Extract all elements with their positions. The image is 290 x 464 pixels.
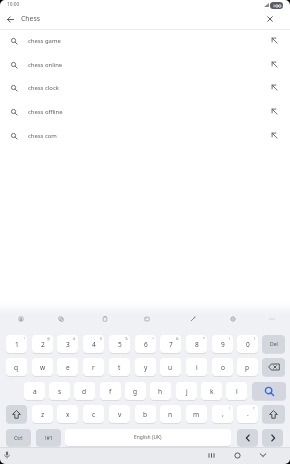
button[interactable]: 7 — [160, 335, 181, 353]
staticText: ) — [254, 336, 256, 341]
button[interactable] — [53, 311, 69, 327]
button[interactable] — [6, 405, 27, 423]
button[interactable]: 8 — [186, 335, 207, 353]
staticText: 5 — [118, 340, 122, 349]
button[interactable]: g — [125, 382, 146, 400]
button[interactable]: a — [24, 382, 45, 400]
button[interactable]: !#1 — [36, 429, 61, 446]
button[interactable]: r — [83, 358, 104, 376]
button[interactable]: 4 — [83, 335, 104, 353]
button[interactable]: i — [186, 358, 207, 376]
staticText: y — [144, 363, 148, 372]
button[interactable] — [237, 429, 258, 446]
button[interactable] — [13, 311, 29, 327]
button[interactable]: z — [32, 405, 53, 423]
button[interactable]: f — [100, 382, 121, 400]
button[interactable] — [2, 11, 18, 27]
button[interactable]: h — [150, 382, 171, 400]
button[interactable]: . — [237, 405, 258, 423]
button[interactable]: , — [212, 405, 233, 423]
button[interactable] — [262, 11, 278, 27]
staticText: chess clock — [28, 84, 59, 92]
button[interactable]: l — [226, 382, 247, 400]
button[interactable]: Del — [262, 335, 285, 353]
button[interactable]: English (UK) — [65, 429, 231, 446]
button[interactable] — [204, 448, 218, 462]
staticText: p — [245, 363, 250, 372]
button[interactable] — [97, 311, 113, 327]
staticText: ^ — [152, 336, 154, 341]
staticText: j — [186, 387, 188, 396]
button[interactable]: o — [212, 358, 233, 376]
staticText: 10:00 — [7, 1, 20, 8]
staticText: chess offline — [28, 108, 63, 116]
button[interactable]: Ctrl — [6, 429, 31, 446]
button[interactable] — [139, 311, 155, 327]
staticText: 8 — [195, 340, 199, 349]
button[interactable]: x — [57, 405, 78, 423]
staticText: ! — [229, 406, 230, 411]
button[interactable]: v — [109, 405, 130, 423]
button[interactable]: 2 — [32, 335, 53, 353]
staticText: , — [222, 409, 224, 418]
button[interactable] — [262, 429, 283, 446]
staticText: % — [125, 336, 128, 341]
staticText: 7 — [169, 340, 173, 349]
button[interactable]: 9 — [212, 335, 233, 353]
staticText: h — [158, 387, 163, 396]
staticText: $ — [100, 336, 102, 341]
button[interactable]: y — [135, 358, 156, 376]
button[interactable]: chess game — [0, 30, 290, 54]
button[interactable] — [185, 311, 201, 327]
button[interactable] — [230, 448, 244, 462]
staticText: t — [118, 363, 121, 372]
staticText: k — [210, 387, 214, 396]
button[interactable]: 3 — [57, 335, 78, 353]
button[interactable]: chess com — [0, 125, 290, 149]
button[interactable] — [1, 449, 13, 461]
staticText: chess online — [28, 61, 63, 69]
staticText: v — [118, 410, 122, 419]
staticText: c — [92, 410, 96, 419]
staticText: s — [58, 387, 62, 396]
button[interactable]: b — [135, 405, 156, 423]
button[interactable]: p — [237, 358, 258, 376]
button[interactable] — [262, 358, 285, 376]
button[interactable] — [264, 311, 280, 327]
staticText: # — [73, 336, 76, 341]
button[interactable]: s — [49, 382, 70, 400]
button[interactable]: 6 — [135, 335, 156, 353]
staticText: Chess — [21, 14, 41, 23]
button[interactable]: u — [160, 358, 181, 376]
staticText: e — [66, 363, 70, 372]
staticText: * — [203, 336, 205, 341]
staticText: z — [41, 410, 45, 419]
button[interactable]: 1 — [6, 335, 27, 353]
button[interactable]: t — [109, 358, 130, 376]
button[interactable]: j — [176, 382, 197, 400]
button[interactable]: n — [160, 405, 181, 423]
button[interactable]: c — [83, 405, 104, 423]
staticText: chess game — [28, 37, 61, 45]
button[interactable]: d — [74, 382, 95, 400]
button[interactable] — [256, 448, 270, 462]
button[interactable]: chess offline — [0, 101, 290, 125]
button[interactable]: q — [6, 358, 27, 376]
button[interactable]: k — [201, 382, 222, 400]
button[interactable] — [262, 405, 285, 423]
button[interactable]: chess clock — [0, 77, 290, 101]
button[interactable] — [225, 311, 241, 327]
button[interactable]: w — [32, 358, 53, 376]
staticText: . — [247, 409, 249, 418]
button[interactable]: 5 — [109, 335, 130, 353]
staticText: ( — [229, 336, 231, 341]
staticText: ? — [253, 406, 255, 411]
button[interactable]: 0 — [237, 335, 258, 353]
button[interactable]: chess online — [0, 54, 290, 78]
staticText: i — [196, 363, 198, 372]
staticText: & — [176, 336, 179, 341]
button[interactable]: m — [186, 405, 207, 423]
button[interactable] — [252, 382, 286, 400]
button[interactable]: e — [57, 358, 78, 376]
staticText: m — [193, 410, 200, 419]
